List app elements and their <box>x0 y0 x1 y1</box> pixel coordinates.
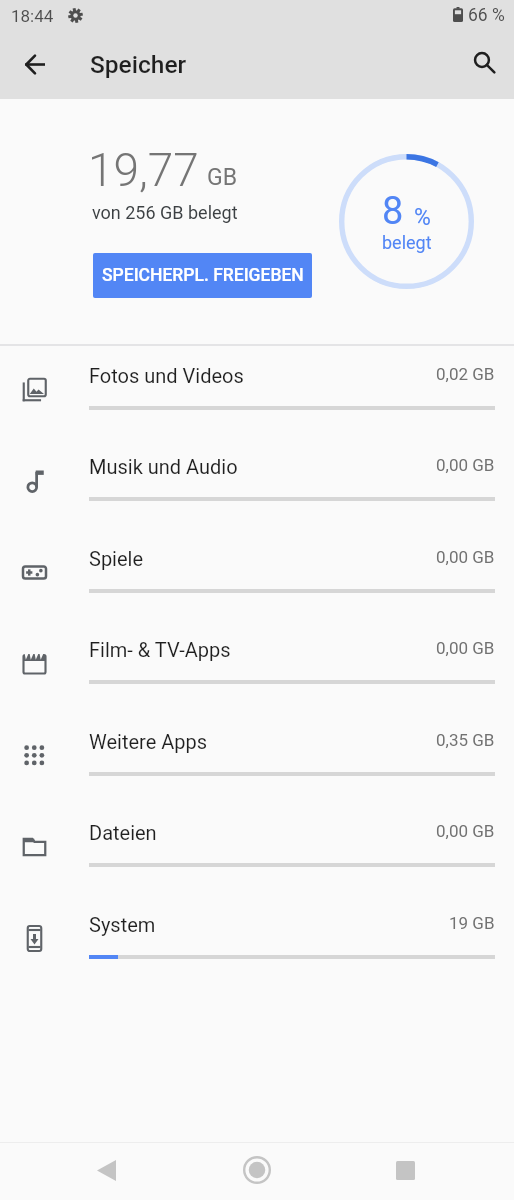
staticText: belegt <box>382 232 432 253</box>
button[interactable]: System <box>0 895 514 986</box>
staticText: 8 <box>382 189 404 234</box>
button[interactable]: Fotos und Videos <box>0 346 514 437</box>
staticText: 19 GB <box>449 913 495 933</box>
button[interactable]: Recents <box>377 1142 433 1198</box>
staticText: System <box>89 913 156 936</box>
button[interactable]: Back <box>11 40 59 88</box>
button[interactable]: SPEICHERPL. FREIGEBEN <box>93 253 312 298</box>
staticText: 0,00 GB <box>436 455 495 475</box>
staticText: SPEICHERPL. FREIGEBEN <box>102 265 304 286</box>
button[interactable]: Search <box>460 38 508 86</box>
button[interactable]: Dateien <box>0 803 514 894</box>
staticText: Dateien <box>89 821 157 844</box>
staticText: Film- & TV-Apps <box>89 638 231 661</box>
staticText: Musik und Audio <box>89 455 238 478</box>
staticText: 0,00 GB <box>436 547 495 567</box>
staticText: 0,00 GB <box>436 638 495 658</box>
staticText: 66 % <box>468 5 505 26</box>
button[interactable]: Weitere Apps <box>0 712 514 803</box>
button[interactable]: Home <box>229 1142 285 1198</box>
staticText: 18:44 <box>11 6 54 26</box>
staticText: von 256 GB belegt <box>92 202 238 223</box>
staticText: Speicher <box>90 50 187 79</box>
staticText: 0,35 GB <box>436 730 495 750</box>
staticText: Fotos und Videos <box>89 364 244 387</box>
staticText: 0,02 GB <box>436 364 495 384</box>
button[interactable]: Back <box>78 1142 134 1198</box>
staticText: 0,00 GB <box>436 821 495 841</box>
staticText: % <box>414 204 431 231</box>
button[interactable]: Film- & TV-Apps <box>0 620 514 711</box>
staticText: Weitere Apps <box>89 730 208 753</box>
staticText: Spiele <box>89 547 144 570</box>
staticText: 19,77 <box>88 143 199 197</box>
button[interactable]: Spiele <box>0 529 514 620</box>
button[interactable]: Musik und Audio <box>0 437 514 528</box>
staticText: GB <box>207 164 237 191</box>
